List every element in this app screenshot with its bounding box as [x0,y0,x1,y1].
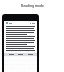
staticText: Reading mode [21,4,44,8]
button[interactable]: Reading mode [0,4,64,8]
